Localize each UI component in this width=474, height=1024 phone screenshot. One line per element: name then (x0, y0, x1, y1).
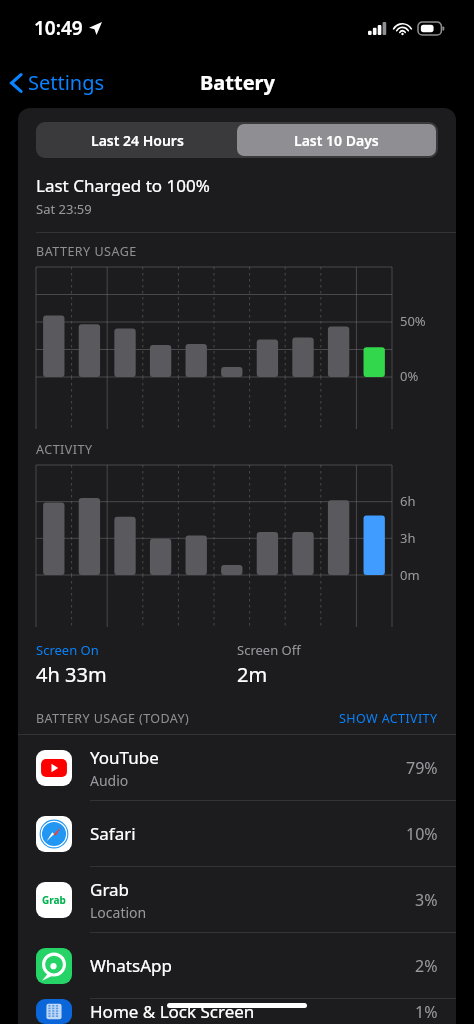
staticText: Sat 23:59 (36, 200, 92, 218)
staticText: Last 24 Hours (91, 131, 184, 150)
staticText: Grab (42, 893, 66, 907)
button[interactable]: YouTube (18, 735, 456, 800)
staticText: 79% (406, 757, 438, 779)
button[interactable]: Grab (18, 867, 456, 932)
staticText: ACTIVITY (36, 441, 93, 458)
staticText: 3h (400, 529, 416, 547)
staticText: 3% (415, 889, 438, 911)
staticText: Screen On (36, 641, 99, 659)
staticText: Grab (90, 878, 130, 901)
staticText: WhatsApp (90, 954, 172, 977)
staticText: Battery (200, 69, 275, 96)
staticText: 6h (400, 492, 416, 510)
button[interactable]: Safari (18, 801, 456, 866)
button[interactable]: Last 24 Hours (38, 124, 237, 156)
button[interactable]: Last 10 Days (237, 124, 436, 156)
staticText: BATTERY USAGE (TODAY) (36, 710, 190, 727)
staticText: 2m (237, 661, 268, 688)
button[interactable]: Home & Lock Screen (18, 999, 456, 1024)
staticText: 10% (406, 823, 438, 845)
staticText: Screen Off (237, 641, 301, 659)
staticText: 50% (400, 312, 426, 330)
button[interactable]: Settings (0, 63, 113, 102)
staticText: Audio (90, 771, 129, 790)
staticText: 0m (400, 566, 420, 584)
staticText: 1% (415, 1001, 438, 1023)
staticText: 2% (415, 955, 438, 977)
staticText: 10:49 (34, 15, 83, 41)
staticText: Last 10 Days (294, 131, 379, 150)
button[interactable]: SHOW ACTIVITY (339, 710, 438, 727)
staticText: SHOW ACTIVITY (339, 710, 438, 727)
staticText: Location (90, 903, 147, 922)
staticText: BATTERY USAGE (36, 243, 137, 260)
button[interactable]: WhatsApp (18, 933, 456, 998)
staticText: Settings (28, 69, 105, 96)
staticText: YouTube (90, 746, 159, 769)
staticText: Safari (90, 822, 136, 845)
staticText: 4h 33m (36, 661, 107, 688)
staticText: Last Charged to 100% (36, 174, 210, 197)
staticText: 0% (400, 367, 419, 385)
staticText: Home & Lock Screen (90, 1000, 255, 1023)
